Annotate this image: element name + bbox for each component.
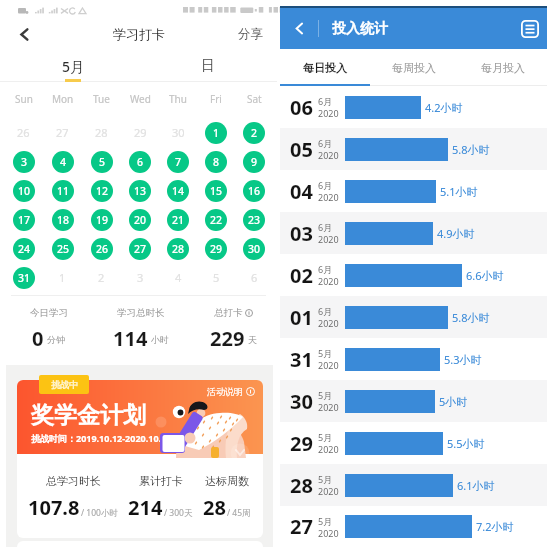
staticText: 2020 <box>318 401 339 413</box>
staticText: 6.1小时 <box>457 478 495 493</box>
staticText: 27 <box>134 242 147 256</box>
staticText: 5月 <box>318 431 333 443</box>
button[interactable]: 4 <box>52 151 74 173</box>
button[interactable]: 26 <box>91 238 113 260</box>
button[interactable]: 31 <box>280 338 547 380</box>
staticText: 6月 <box>318 305 333 317</box>
button[interactable]: 日 <box>168 54 248 78</box>
staticText: 02 <box>290 262 313 289</box>
button[interactable]: 04 <box>280 170 547 212</box>
staticText: 22 <box>210 213 223 227</box>
button[interactable]: 27 <box>280 506 547 547</box>
button[interactable]: 30 <box>243 238 265 260</box>
staticText: 6月 <box>318 221 333 233</box>
staticText: 24 <box>18 242 31 256</box>
button[interactable]: 分享 <box>223 20 277 48</box>
staticText: 6月 <box>318 95 333 107</box>
button[interactable]: 15 <box>205 180 227 202</box>
staticText: 11 <box>57 184 70 198</box>
button[interactable]: 25 <box>52 238 74 260</box>
staticText: 6 <box>251 270 258 285</box>
button[interactable]: 21 <box>167 209 189 231</box>
button[interactable]: Back <box>280 8 318 49</box>
staticText: Mon <box>52 92 74 106</box>
staticText: 每月投入 <box>481 61 525 75</box>
button[interactable]: 12 <box>91 180 113 202</box>
button[interactable]: 6 <box>129 151 151 173</box>
staticText: 107.8 <box>28 494 80 521</box>
button[interactable]: 06 <box>280 86 547 128</box>
staticText: 达标周数 <box>205 474 249 488</box>
button[interactable]: 10 <box>13 180 35 202</box>
staticText: 2020 <box>318 191 339 203</box>
staticText: 05 <box>290 136 313 163</box>
button[interactable]: 22 <box>205 209 227 231</box>
staticText: 2 <box>98 270 105 285</box>
button[interactable]: 02 <box>280 254 547 296</box>
button[interactable]: Back <box>8 20 40 48</box>
button[interactable]: 28 <box>280 464 547 506</box>
button[interactable]: 2 <box>243 122 265 144</box>
button[interactable]: 每月投入 <box>458 52 547 84</box>
button[interactable]: 28 <box>167 238 189 260</box>
button[interactable]: 活动说明 <box>207 386 255 397</box>
button[interactable]: 奖学金计划 <box>17 380 263 538</box>
button[interactable]: 13 <box>129 180 151 202</box>
staticText: 5月 <box>318 347 333 359</box>
staticText: 27 <box>290 513 313 540</box>
button[interactable]: 20 <box>129 209 151 231</box>
staticText: 2020 <box>318 107 339 119</box>
staticText: 06 <box>290 94 313 121</box>
button[interactable]: 1 <box>205 122 227 144</box>
button[interactable]: 8 <box>205 151 227 173</box>
button[interactable]: 05 <box>280 128 547 170</box>
staticText: 5月 <box>318 473 333 485</box>
staticText: 19 <box>96 213 109 227</box>
button[interactable]: 29 <box>280 422 547 464</box>
staticText: 26 <box>17 125 30 140</box>
staticText: 1 <box>59 270 66 285</box>
button[interactable]: 03 <box>280 212 547 254</box>
button[interactable]: 5月 <box>33 54 113 78</box>
staticText: 6月 <box>318 179 333 191</box>
staticText: 29 <box>134 125 147 140</box>
button[interactable]: 30 <box>280 380 547 422</box>
button[interactable]: 14 <box>167 180 189 202</box>
button[interactable]: 17 <box>13 209 35 231</box>
staticText: 17 <box>18 213 31 227</box>
button[interactable]: 每日投入 <box>280 52 369 84</box>
button[interactable]: 29 <box>205 238 227 260</box>
staticText: 5 <box>213 270 220 285</box>
staticText: 2020 <box>318 443 339 455</box>
button[interactable]: 01 <box>280 296 547 338</box>
button[interactable]: 31 <box>13 267 35 289</box>
staticText: 27 <box>56 125 69 140</box>
staticText: 5.5小时 <box>447 436 485 451</box>
button[interactable]: 27 <box>129 238 151 260</box>
button[interactable]: 11 <box>52 180 74 202</box>
button[interactable]: 7 <box>167 151 189 173</box>
staticText: 2020 <box>318 233 339 245</box>
button[interactable]: 5 <box>91 151 113 173</box>
button[interactable]: 18 <box>52 209 74 231</box>
staticText: 5.8小时 <box>452 142 490 157</box>
staticText: 5月 <box>62 57 85 76</box>
button[interactable]: 16 <box>243 180 265 202</box>
staticText: 累计打卡 <box>139 474 183 488</box>
staticText: 日 <box>201 57 215 75</box>
staticText: / 300天 <box>164 507 193 519</box>
button[interactable]: 9 <box>243 151 265 173</box>
button[interactable]: Menu <box>512 8 547 49</box>
button[interactable]: 23 <box>243 209 265 231</box>
button[interactable]: 19 <box>91 209 113 231</box>
button[interactable]: 每周投入 <box>369 52 458 84</box>
staticText: Tue <box>93 92 110 106</box>
staticText: 9 <box>251 155 258 169</box>
button[interactable]: 3 <box>13 151 35 173</box>
staticText: 16 <box>248 184 261 198</box>
staticText: 28 <box>172 242 185 256</box>
staticText: 2020 <box>318 359 339 371</box>
staticText: 奖学金计划 <box>31 401 146 430</box>
button[interactable]: 24 <box>13 238 35 260</box>
